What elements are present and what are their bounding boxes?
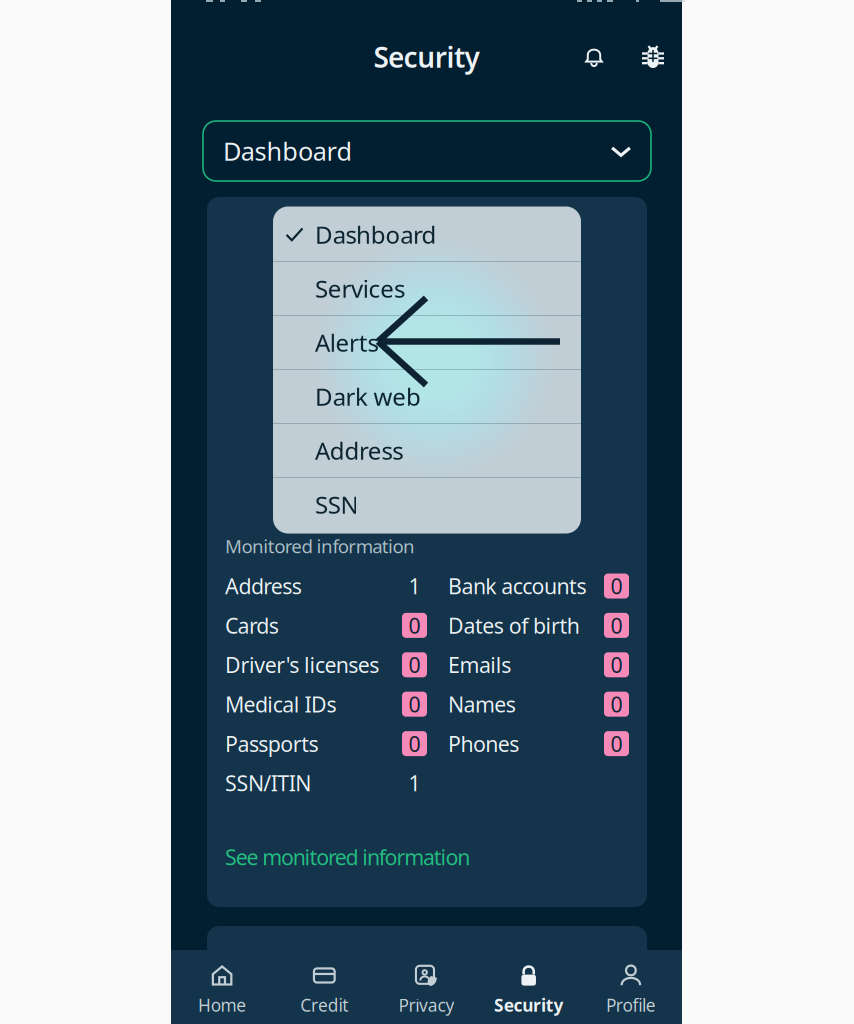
staticText: 0 xyxy=(610,651,622,679)
button[interactable]: Notifications xyxy=(572,35,616,79)
button[interactable]: Home xyxy=(171,944,273,1024)
button[interactable]: Report a bug xyxy=(631,35,675,79)
staticText: 0 xyxy=(610,572,622,600)
staticText: Passports xyxy=(225,729,319,758)
staticText: 0 xyxy=(610,690,622,718)
button[interactable]: Credit xyxy=(273,944,375,1024)
staticText: 0 xyxy=(610,611,622,639)
staticText: Home xyxy=(198,993,246,1016)
staticText: Driver's licenses xyxy=(225,651,379,679)
staticText: Privacy xyxy=(399,993,454,1016)
button[interactable]: Services xyxy=(273,262,581,316)
staticText: 1 xyxy=(408,769,420,797)
button[interactable]: SSN xyxy=(273,478,581,532)
button[interactable]: See monitored information xyxy=(225,843,470,871)
staticText: 0 xyxy=(408,690,420,718)
button[interactable]: Address xyxy=(273,424,581,478)
staticText: Address xyxy=(315,435,403,466)
staticText: Dashboard xyxy=(223,134,352,168)
staticText: Dates of birth xyxy=(448,611,580,639)
staticText: 0 xyxy=(408,729,420,758)
staticText: Names xyxy=(448,690,516,718)
staticText: 1 xyxy=(408,572,420,600)
staticText: Address xyxy=(225,572,302,600)
staticText: Emails xyxy=(448,651,511,679)
button[interactable]: Dark web xyxy=(273,370,581,424)
staticText: SSN/ITIN xyxy=(225,769,311,797)
staticText: Security xyxy=(494,993,563,1016)
staticText: 0 xyxy=(408,611,420,639)
staticText: Profile xyxy=(606,993,656,1016)
staticText: Bank accounts xyxy=(448,572,586,600)
staticText: Security xyxy=(373,38,480,76)
staticText: Alerts xyxy=(315,327,378,358)
button[interactable]: Profile xyxy=(580,944,682,1024)
button[interactable]: Privacy xyxy=(375,944,478,1024)
staticText: Phones xyxy=(448,729,519,758)
button[interactable]: Alerts xyxy=(273,316,581,370)
button[interactable]: Dashboard xyxy=(203,121,651,181)
staticText: Monitored information xyxy=(225,534,415,558)
button[interactable]: Security xyxy=(478,944,580,1024)
staticText: Medical IDs xyxy=(225,690,336,718)
staticText: Dark web xyxy=(315,381,421,412)
staticText: See monitored information xyxy=(225,843,470,871)
staticText: Cards xyxy=(225,611,279,639)
button[interactable]: Dashboard xyxy=(273,208,581,262)
staticText: Credit xyxy=(300,993,348,1016)
staticText: SSN xyxy=(315,489,358,520)
staticText: 0 xyxy=(610,729,622,758)
staticText: Dashboard xyxy=(315,219,437,250)
staticText: 0 xyxy=(408,651,420,679)
staticText: Services xyxy=(315,273,405,304)
